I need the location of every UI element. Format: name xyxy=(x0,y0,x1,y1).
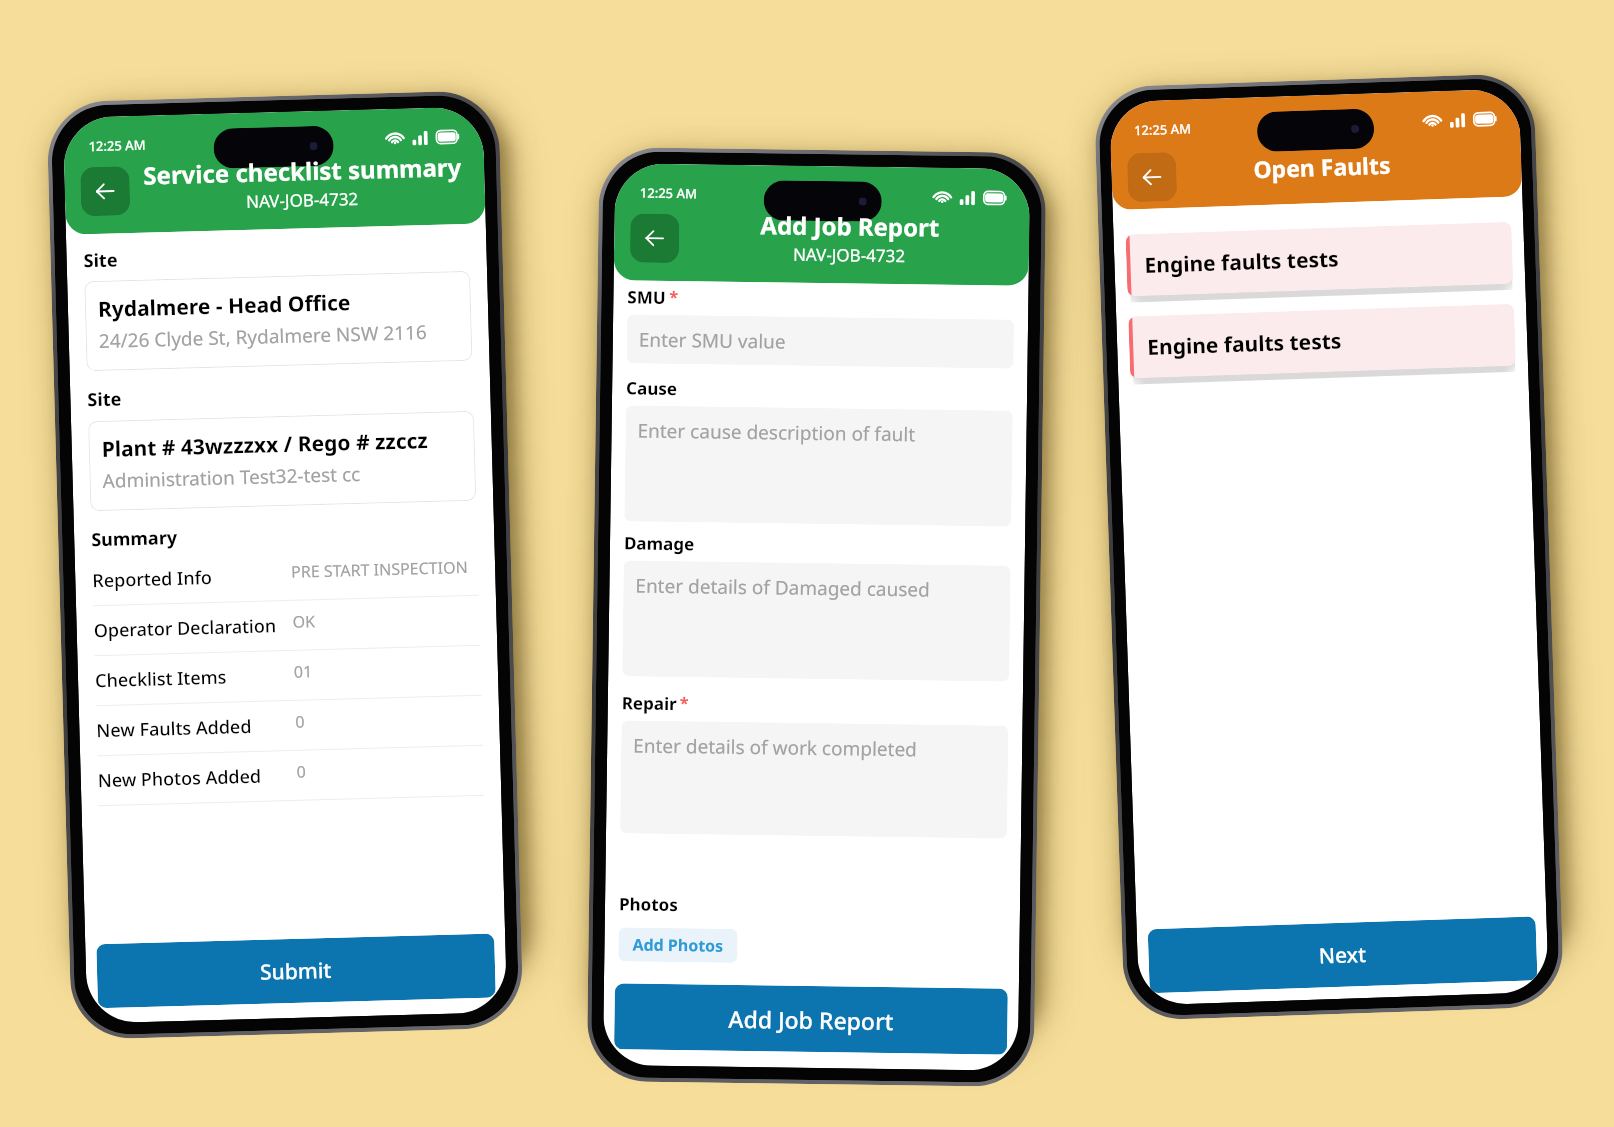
staticText: Photos xyxy=(619,892,678,916)
button[interactable]: Next xyxy=(1148,916,1537,993)
staticText: New Faults Added xyxy=(96,714,253,743)
staticText: 0 xyxy=(296,760,307,783)
staticText: * xyxy=(680,692,689,714)
staticText: 12:25 AM xyxy=(88,136,147,155)
staticText: Administration Test32-test cc xyxy=(102,461,361,494)
button[interactable]: Add Job Report xyxy=(614,983,1008,1055)
staticText: Add Job Report xyxy=(728,1003,895,1036)
button[interactable]: Engine faults tests xyxy=(1128,304,1516,378)
button[interactable]: Reported Info xyxy=(92,546,479,605)
button[interactable]: Engine faults tests xyxy=(1125,222,1513,296)
staticText: Summary xyxy=(91,525,177,552)
button[interactable]: Submit xyxy=(96,933,496,1008)
button[interactable]: Enter details of work completed xyxy=(620,720,1008,839)
button[interactable]: Enter details of Damaged caused xyxy=(622,560,1011,682)
staticText: Reported Info xyxy=(92,565,213,593)
staticText: PRE START INSPECTION xyxy=(291,556,468,583)
button[interactable]: Back xyxy=(1127,152,1177,202)
staticText: Engine faults tests xyxy=(1147,326,1343,362)
staticText: NAV-JOB-4732 xyxy=(246,187,359,213)
staticText: Cause xyxy=(626,376,677,400)
staticText: Enter details of Damaged caused xyxy=(635,572,930,603)
button[interactable]: Back xyxy=(630,213,680,263)
staticText: Checklist Items xyxy=(95,665,227,693)
staticText: Enter details of work completed xyxy=(633,732,917,762)
staticText: 12:25 AM xyxy=(1134,119,1192,139)
staticText: Next xyxy=(1318,940,1367,971)
staticText: Operator Declaration xyxy=(93,613,277,643)
staticText: 01 xyxy=(294,660,313,683)
staticText: * xyxy=(669,286,678,308)
staticText: Enter cause description of fault xyxy=(637,417,916,447)
button[interactable]: Checklist Items xyxy=(94,646,482,705)
staticText: Open Faults xyxy=(1253,149,1392,184)
staticText: Engine faults tests xyxy=(1144,244,1340,280)
staticText: OK xyxy=(292,610,316,633)
staticText: Enter SMU value xyxy=(639,326,786,353)
button[interactable]: Add Photos xyxy=(618,927,738,963)
button[interactable]: New Faults Added xyxy=(96,696,483,755)
staticText: NAV-JOB-4732 xyxy=(793,243,906,267)
button[interactable]: Operator Declaration xyxy=(93,596,480,655)
staticText: Add Photos xyxy=(632,933,724,957)
staticText: Submit xyxy=(260,956,332,987)
staticText: Service checklist summary xyxy=(143,150,462,192)
staticText: SMU xyxy=(627,285,666,309)
staticText: Site xyxy=(83,247,118,273)
button[interactable]: Enter cause description of fault xyxy=(624,405,1013,527)
staticText: New Photos Added xyxy=(97,764,262,793)
staticText: Site xyxy=(87,386,122,412)
button[interactable]: Plant # 43wzzzxx / Rego # zzccz xyxy=(88,411,476,511)
staticText: 24/26 Clyde St, Rydalmere NSW 2116 xyxy=(98,319,428,354)
staticText: 12:25 AM xyxy=(640,183,698,202)
button[interactable]: Back xyxy=(80,166,130,216)
staticText: Add Job Report xyxy=(760,208,940,244)
staticText: 0 xyxy=(295,710,306,733)
staticText: Rydalmere - Head Office xyxy=(98,288,351,324)
staticText: Damage xyxy=(624,531,695,555)
button[interactable]: Rydalmere - Head Office xyxy=(84,271,472,371)
staticText: Repair xyxy=(622,691,677,715)
button[interactable]: Enter SMU value xyxy=(626,314,1014,369)
button[interactable]: New Photos Added xyxy=(97,746,484,805)
staticText: Plant # 43wzzzxx / Rego # zzccz xyxy=(101,426,429,464)
